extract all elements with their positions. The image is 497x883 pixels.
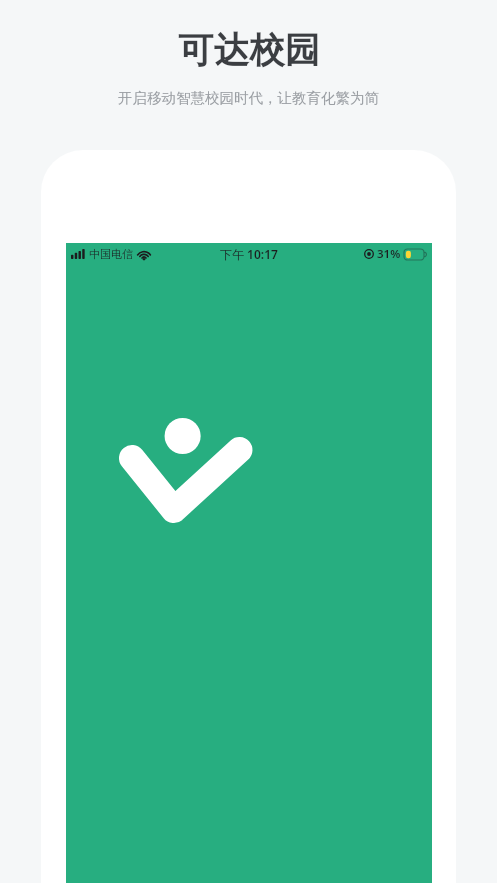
staticText: 可达校园	[178, 28, 320, 72]
staticText: 下午 10:17	[220, 246, 278, 262]
button[interactable]: 可达校园 logo	[121, 405, 262, 525]
staticText: 31%	[377, 246, 401, 262]
staticText: 中国电信	[89, 247, 133, 261]
staticText: 开启移动智慧校园时代，让教育化繁为简	[118, 89, 379, 107]
